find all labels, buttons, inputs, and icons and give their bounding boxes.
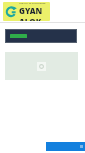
button[interactable]: THE WAY OF KNOWLEDGE [3, 2, 50, 21]
staticText: THE WAY OF KNOWLEDGE [19, 2, 46, 5]
button[interactable] [6, 30, 76, 42]
button[interactable]: Continue [46, 142, 85, 151]
other: Image placeholder [37, 62, 46, 71]
button[interactable]: Image placeholder [5, 52, 78, 80]
staticText: GYANALOK [19, 5, 48, 21]
